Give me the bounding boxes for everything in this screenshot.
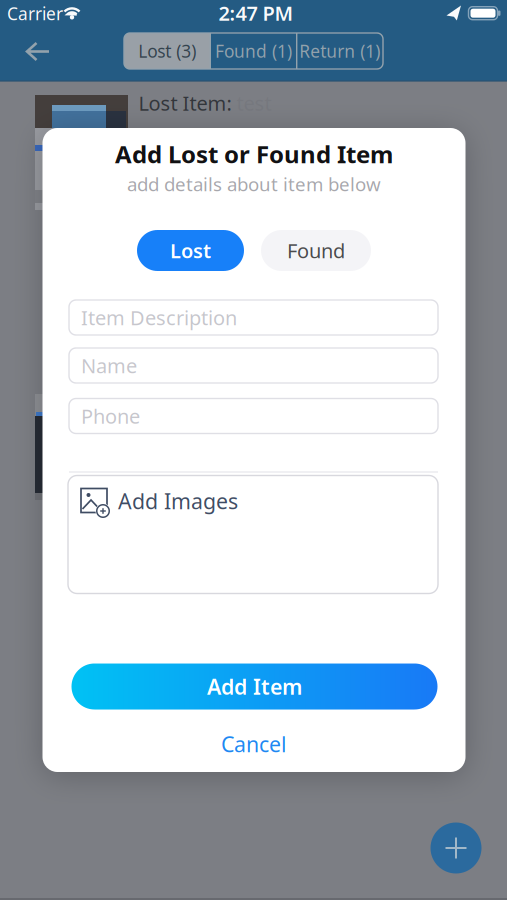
button[interactable]: Lost (3) [124, 33, 210, 69]
staticText: Add Images [118, 487, 238, 515]
staticText: Phone [81, 403, 140, 429]
button[interactable]: Return (1) [297, 33, 383, 69]
staticText: Found [287, 237, 345, 264]
button[interactable]: Add Images [68, 475, 438, 593]
staticText: Found (1) [215, 39, 292, 62]
button[interactable]: Add Item [71, 663, 437, 709]
staticText: Add Item [207, 672, 302, 701]
staticText: Return (1) [299, 39, 380, 62]
staticText: Lost Item: [138, 90, 231, 116]
button[interactable]: Found (1) [210, 33, 297, 69]
staticText: Item Description [81, 304, 237, 331]
button[interactable]: Add [430, 822, 481, 873]
button[interactable]: Back [16, 33, 60, 69]
staticText: Lost (3) [138, 39, 196, 62]
button[interactable]: Found [261, 230, 371, 271]
staticText: Carrier [7, 2, 63, 25]
button[interactable]: Item Description [69, 300, 438, 335]
staticText: Add Lost or Found Item [115, 138, 393, 170]
button[interactable]: Lost [137, 230, 244, 271]
staticText: add details about item below [127, 172, 381, 196]
button[interactable]: Phone [69, 398, 438, 433]
button[interactable]: Cancel [194, 727, 314, 761]
staticText: Cancel [221, 730, 287, 758]
staticText: 2:47 PM [218, 0, 293, 26]
staticText: Name [81, 352, 137, 379]
button[interactable]: Name [69, 348, 438, 383]
staticText: Lost [170, 237, 211, 264]
